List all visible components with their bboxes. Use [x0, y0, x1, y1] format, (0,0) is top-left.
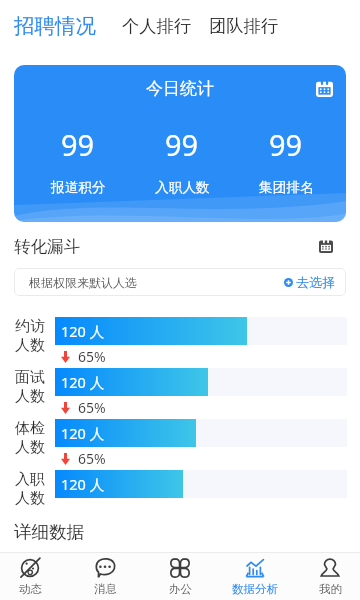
button[interactable]: 动态: [0, 553, 67, 600]
button[interactable]: 招聘情况: [0, 5, 109, 47]
staticText: 团队排行: [209, 15, 279, 37]
button[interactable]: 数据分析: [218, 553, 292, 600]
staticText: 65%: [78, 398, 106, 417]
staticText: 人数: [15, 387, 45, 406]
staticText: 人数: [15, 438, 45, 457]
staticText: 99: [269, 125, 303, 164]
staticText: 体检: [15, 419, 45, 438]
staticText: 消息: [94, 582, 117, 596]
button[interactable]: Select date: [316, 80, 333, 97]
staticText: 入职人数: [155, 179, 210, 196]
staticText: 99: [61, 125, 95, 164]
button[interactable]: 消息: [68, 553, 142, 600]
staticText: 面试: [15, 368, 45, 387]
staticText: 120 人: [61, 321, 105, 341]
staticText: 人数: [15, 489, 45, 508]
button[interactable]: 根据权限来默认人选: [14, 268, 346, 296]
staticText: 120 人: [61, 474, 105, 494]
staticText: 我的: [319, 582, 342, 596]
staticText: 根据权限来默认人选: [29, 275, 137, 290]
staticText: 动态: [19, 582, 42, 596]
staticText: 约访: [15, 317, 45, 336]
button[interactable]: 办公: [143, 553, 217, 600]
staticText: 转化漏斗: [14, 236, 80, 257]
button[interactable]: 个人排行: [109, 5, 202, 47]
button[interactable]: Select date: [319, 239, 333, 253]
staticText: 个人排行: [122, 15, 192, 37]
staticText: 人数: [15, 336, 45, 355]
staticText: 65%: [78, 347, 106, 366]
staticText: 今日统计: [146, 78, 214, 99]
staticText: 详细数据: [14, 521, 84, 543]
staticText: 入职: [15, 470, 45, 489]
staticText: 120 人: [61, 423, 105, 443]
staticText: 办公: [169, 582, 192, 596]
staticText: 65%: [78, 449, 106, 468]
staticText: 招聘情况: [14, 13, 96, 39]
staticText: 120 人: [61, 372, 105, 392]
staticText: 集团排名: [259, 179, 314, 196]
staticText: 报道积分: [51, 179, 106, 196]
button[interactable]: 我的: [293, 553, 360, 600]
button[interactable]: 团队排行: [202, 5, 289, 47]
staticText: 去选择: [296, 274, 335, 290]
staticText: 99: [165, 125, 199, 164]
staticText: 数据分析: [232, 582, 278, 596]
